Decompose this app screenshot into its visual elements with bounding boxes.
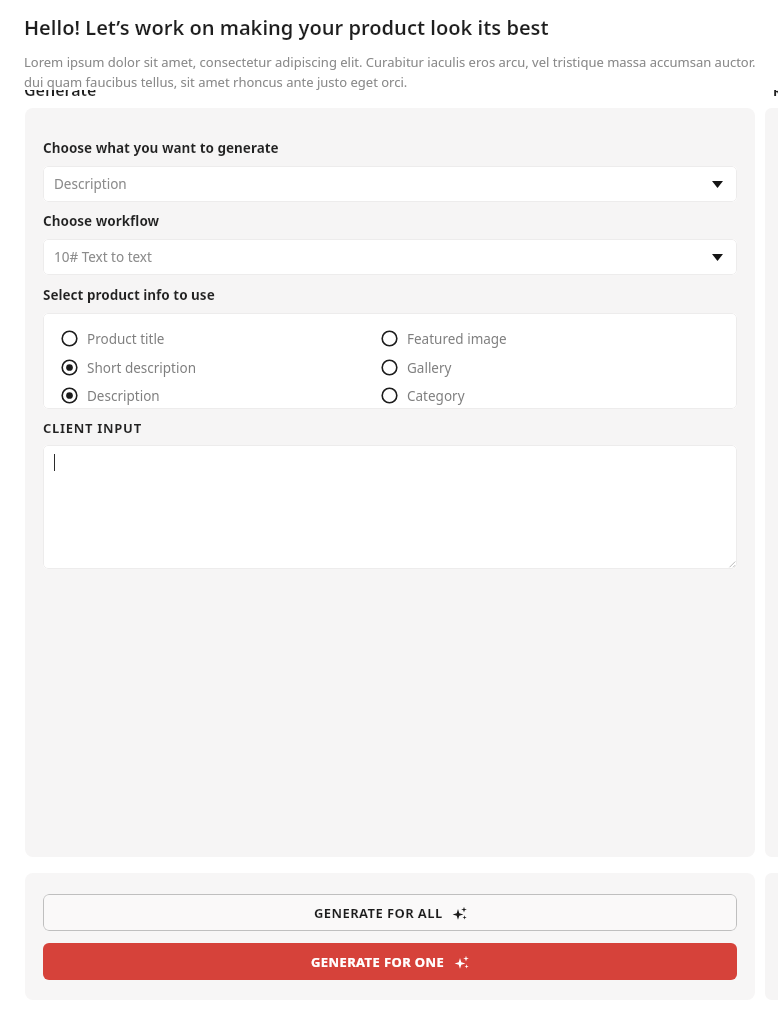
button[interactable]: 10# Text to text (43, 239, 737, 275)
staticText: Choose workflow (43, 212, 160, 230)
staticText: Category (407, 387, 465, 405)
button[interactable]: Category (381, 382, 465, 409)
button[interactable]: Gallery (381, 353, 452, 382)
staticText: Choose what you want to generate (43, 139, 279, 157)
staticText: dui quam faucibus tellus, sit amet rhonc… (24, 73, 408, 90)
staticText: GENERATE FOR ALL (314, 904, 443, 922)
staticText: Select product info to use (43, 286, 215, 304)
staticText: Featured image (407, 330, 507, 348)
button[interactable] (43, 445, 737, 569)
button[interactable]: Product title (61, 324, 165, 353)
other: Generate with AI (452, 906, 467, 921)
staticText: Product title (87, 330, 165, 348)
staticText: Generate (24, 79, 97, 101)
staticText: Description (54, 175, 127, 193)
staticText: Description (87, 387, 160, 405)
button[interactable]: GENERATE FOR ONE (43, 943, 737, 980)
staticText: Hello! Let’s work on making your product… (24, 14, 549, 41)
staticText: 10# Text to text (54, 248, 152, 266)
button[interactable]: Description (43, 166, 737, 202)
staticText: Short description (87, 359, 196, 377)
staticText: CLIENT INPUT (43, 419, 142, 437)
staticText: Lorem ipsum dolor sit amet, consectetur … (24, 53, 778, 71)
button[interactable]: GENERATE FOR ALL (43, 894, 737, 931)
button[interactable]: Featured image (381, 324, 507, 353)
staticText: R (773, 82, 778, 100)
staticText: GENERATE FOR ONE (311, 953, 445, 971)
button[interactable]: Description (61, 382, 160, 409)
button[interactable]: Short description (61, 353, 196, 382)
other: Generate with AI (454, 955, 469, 970)
staticText: Gallery (407, 359, 452, 377)
